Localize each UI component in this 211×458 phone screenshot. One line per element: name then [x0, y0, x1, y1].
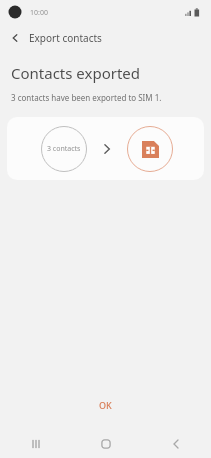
- staticText: 10:00: [30, 8, 48, 18]
- button[interactable]: Home: [71, 430, 141, 458]
- button[interactable]: OK: [0, 392, 211, 418]
- staticText: Contacts exported: [11, 63, 141, 83]
- staticText: OK: [99, 399, 112, 411]
- button[interactable]: 3 contacts: [7, 117, 204, 180]
- staticText: 3 contacts: [47, 144, 81, 154]
- button[interactable]: Recents: [0, 430, 71, 458]
- button[interactable]: Back: [141, 430, 211, 458]
- button[interactable]: Back: [0, 25, 26, 51]
- staticText: 3 contacts have been exported to SIM 1.: [11, 92, 162, 103]
- staticText: Export contacts: [29, 31, 102, 45]
